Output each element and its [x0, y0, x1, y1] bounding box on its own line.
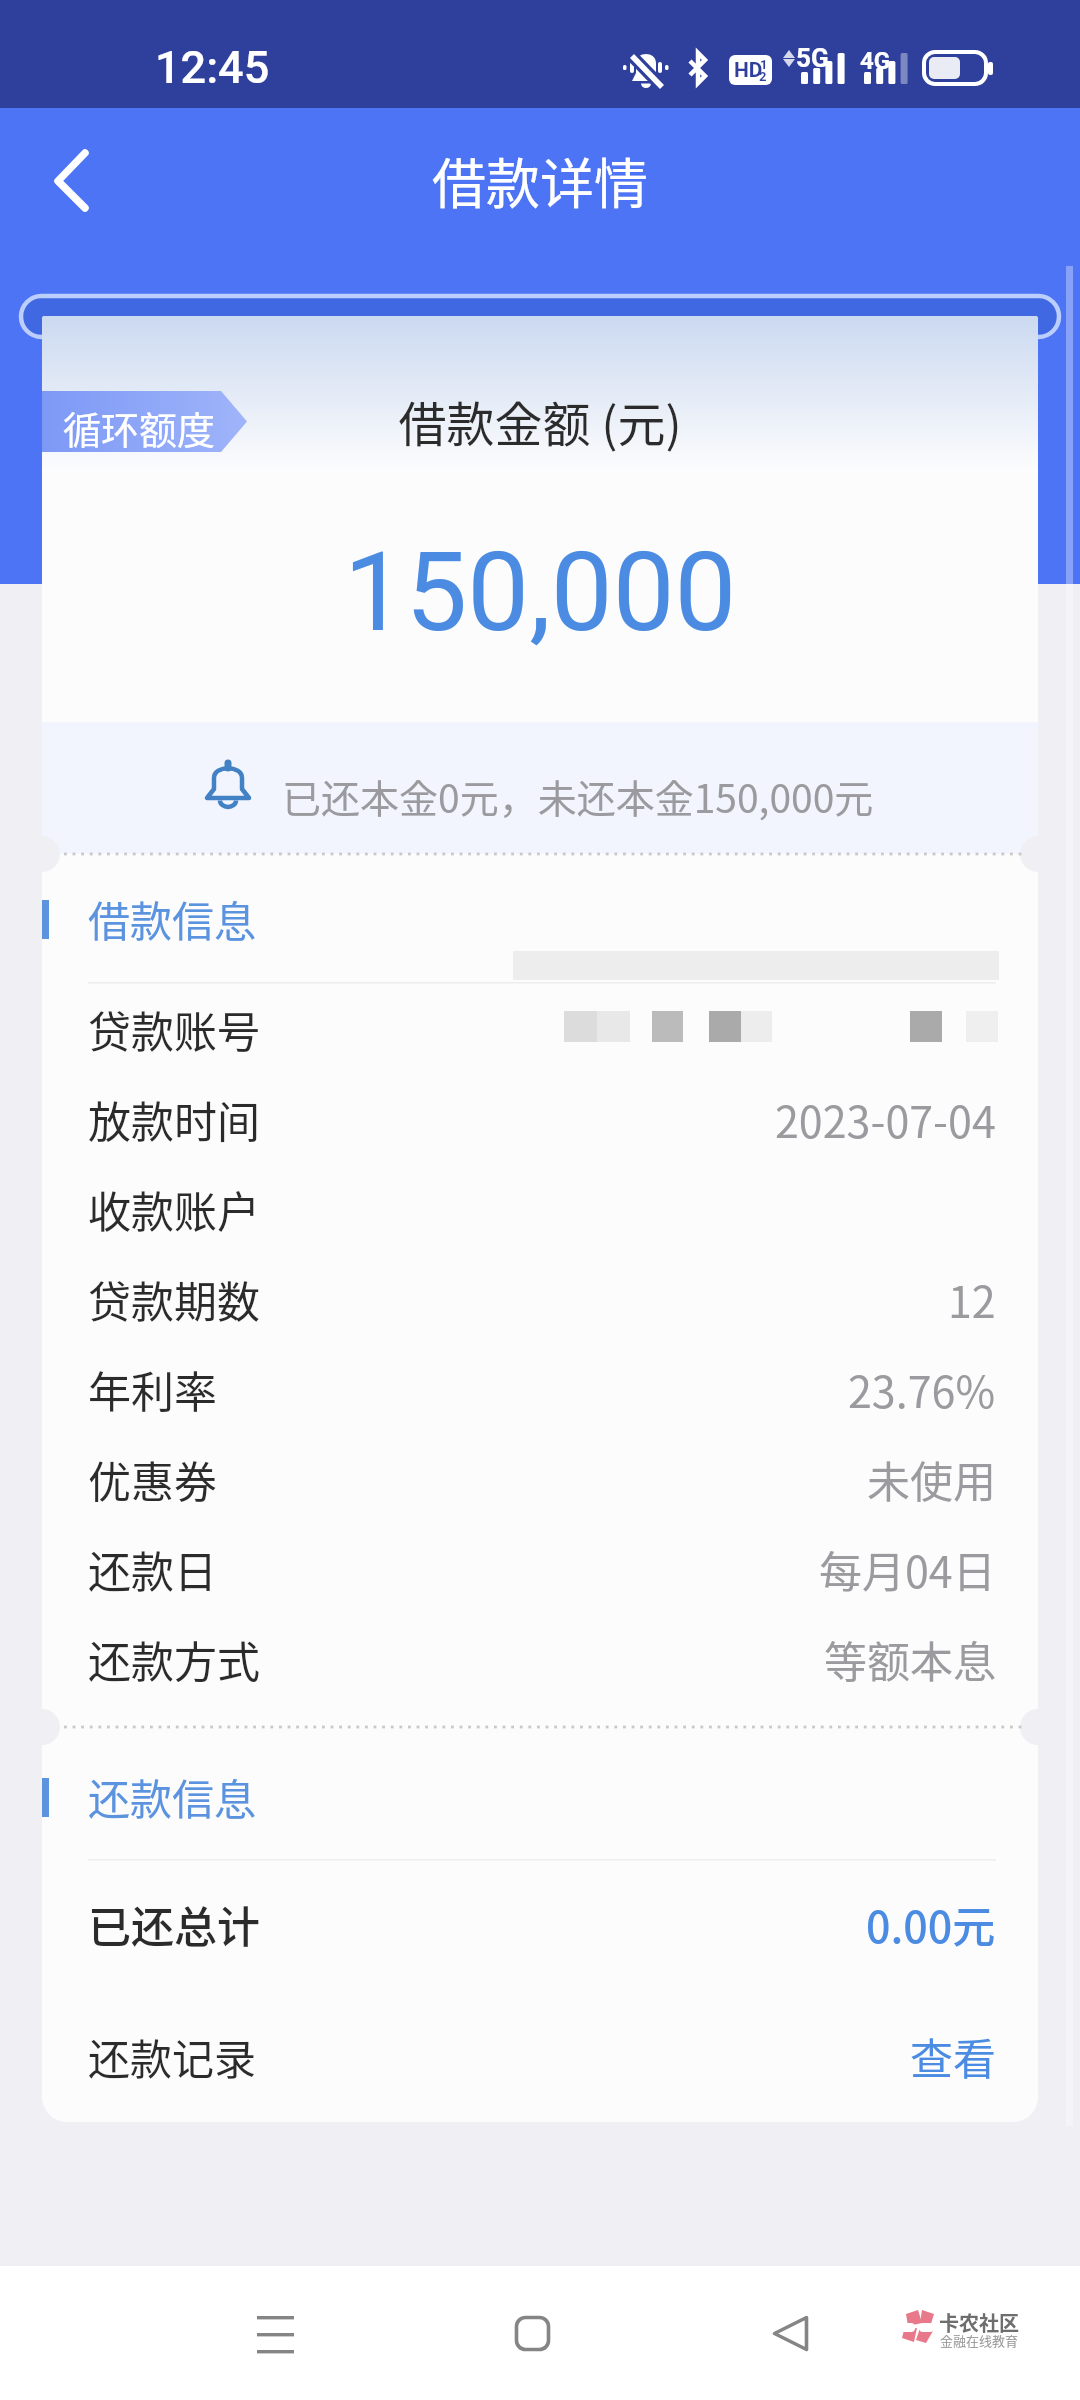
button[interactable]: Back	[731, 2284, 851, 2384]
staticText: 150,000	[42, 528, 1038, 657]
staticText: 年利率	[88, 1358, 217, 1420]
staticText: 卡农社区	[939, 2308, 1019, 2337]
staticText: 还款记录	[88, 2026, 257, 2087]
staticText: 收款账户	[88, 1178, 260, 1240]
staticText: 5G	[796, 43, 829, 73]
staticText: HD	[734, 58, 763, 83]
staticText: 还款方式	[88, 1628, 260, 1690]
staticText: 借款详情	[0, 141, 1080, 219]
staticText: 等额本息	[824, 1628, 996, 1690]
staticText: 优惠券	[88, 1448, 217, 1510]
staticText: 每月04日	[819, 1538, 996, 1600]
staticText: 贷款期数	[88, 1268, 260, 1330]
button[interactable]: 还款记录	[42, 1996, 1038, 2116]
staticText: 借款金额 (元)	[42, 386, 1038, 456]
staticText: 未使用	[867, 1448, 996, 1510]
staticText: 借款信息	[88, 888, 257, 949]
staticText: 1	[760, 57, 768, 72]
staticText: 贷款账号	[88, 998, 260, 1060]
staticText: 2023-07-04	[775, 1088, 996, 1150]
button[interactable]: Recent apps	[215, 2284, 335, 2384]
staticText: 已还本金0元，未还本金150,000元	[282, 768, 874, 824]
staticText: 循环额度	[63, 400, 216, 455]
staticText: 还款信息	[88, 1766, 257, 1827]
staticText: 查看	[910, 2025, 996, 2087]
staticText: 已还总计	[88, 1893, 260, 1955]
staticText: 4G	[860, 47, 891, 75]
staticText: 放款时间	[88, 1088, 260, 1150]
staticText: 0.00元	[866, 1893, 996, 1955]
staticText: 2	[759, 69, 767, 84]
button[interactable]: Home	[473, 2284, 593, 2384]
staticText: 12:45	[155, 41, 270, 94]
staticText: 金融在线教育	[940, 2331, 1019, 2350]
staticText: 还款日	[88, 1538, 217, 1600]
staticText: 12	[948, 1268, 996, 1330]
staticText: 23.76%	[848, 1358, 996, 1420]
button[interactable]: Back	[22, 126, 132, 236]
